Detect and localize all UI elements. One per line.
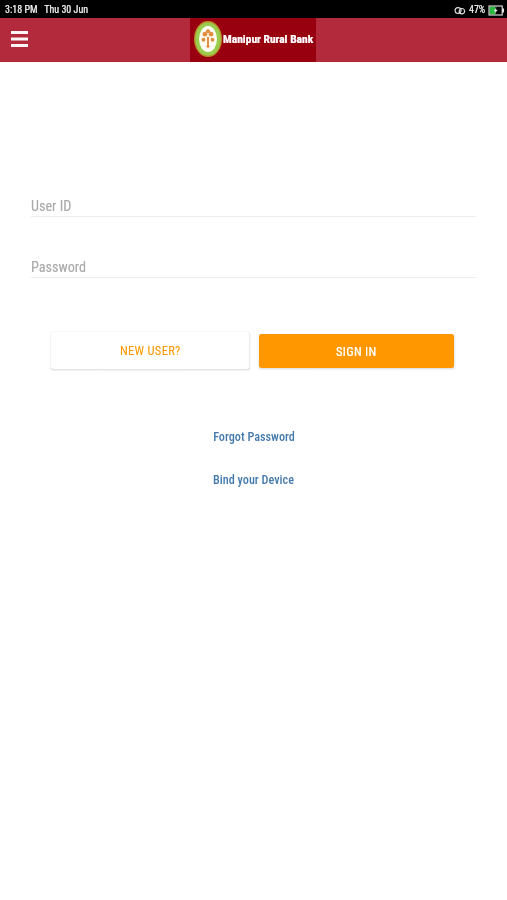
- staticText: Bind your Device: [213, 473, 294, 487]
- button[interactable]: Menu: [3, 24, 35, 56]
- button[interactable]: Bind your Device: [209, 469, 298, 491]
- button[interactable]: User ID: [31, 198, 476, 217]
- button[interactable]: NEW USER?: [51, 332, 249, 369]
- staticText: 47%: [469, 4, 486, 16]
- staticText: Forgot Password: [213, 430, 295, 444]
- staticText: SIGN IN: [336, 344, 377, 359]
- staticText: User ID: [31, 198, 72, 215]
- button[interactable]: SIGN IN: [259, 334, 454, 368]
- staticText: Password: [31, 259, 87, 276]
- staticText: NEW USER?: [120, 343, 181, 358]
- staticText: Manipur Rural Bank: [223, 32, 314, 45]
- staticText: 3:18 PM Thu 30 Jun: [5, 4, 89, 16]
- button[interactable]: Forgot Password: [209, 426, 299, 448]
- button[interactable]: Password: [31, 259, 476, 278]
